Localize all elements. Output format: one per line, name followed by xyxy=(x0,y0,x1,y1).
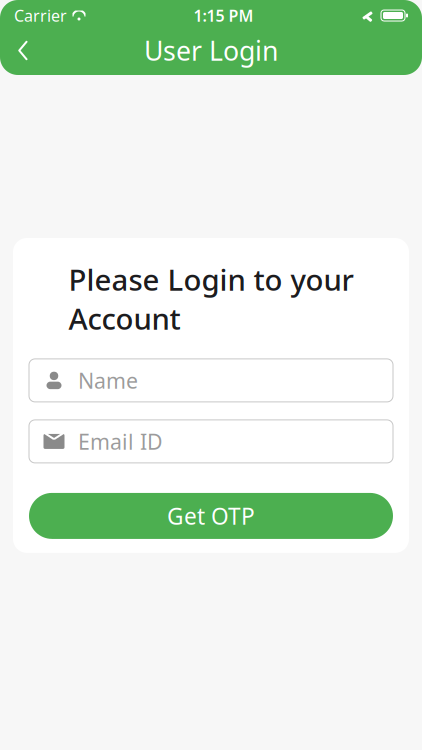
staticText: Get OTP xyxy=(167,501,255,531)
staticText: Please Login to your Account xyxy=(68,260,353,338)
staticText: User Login xyxy=(144,33,278,68)
button[interactable]: Back xyxy=(0,28,46,72)
button[interactable]: Get OTP xyxy=(29,493,393,539)
staticText: Email ID xyxy=(78,427,163,455)
staticText: Carrier xyxy=(14,5,67,26)
staticText: 1:15 PM xyxy=(193,5,253,26)
staticText: Name xyxy=(78,366,138,394)
